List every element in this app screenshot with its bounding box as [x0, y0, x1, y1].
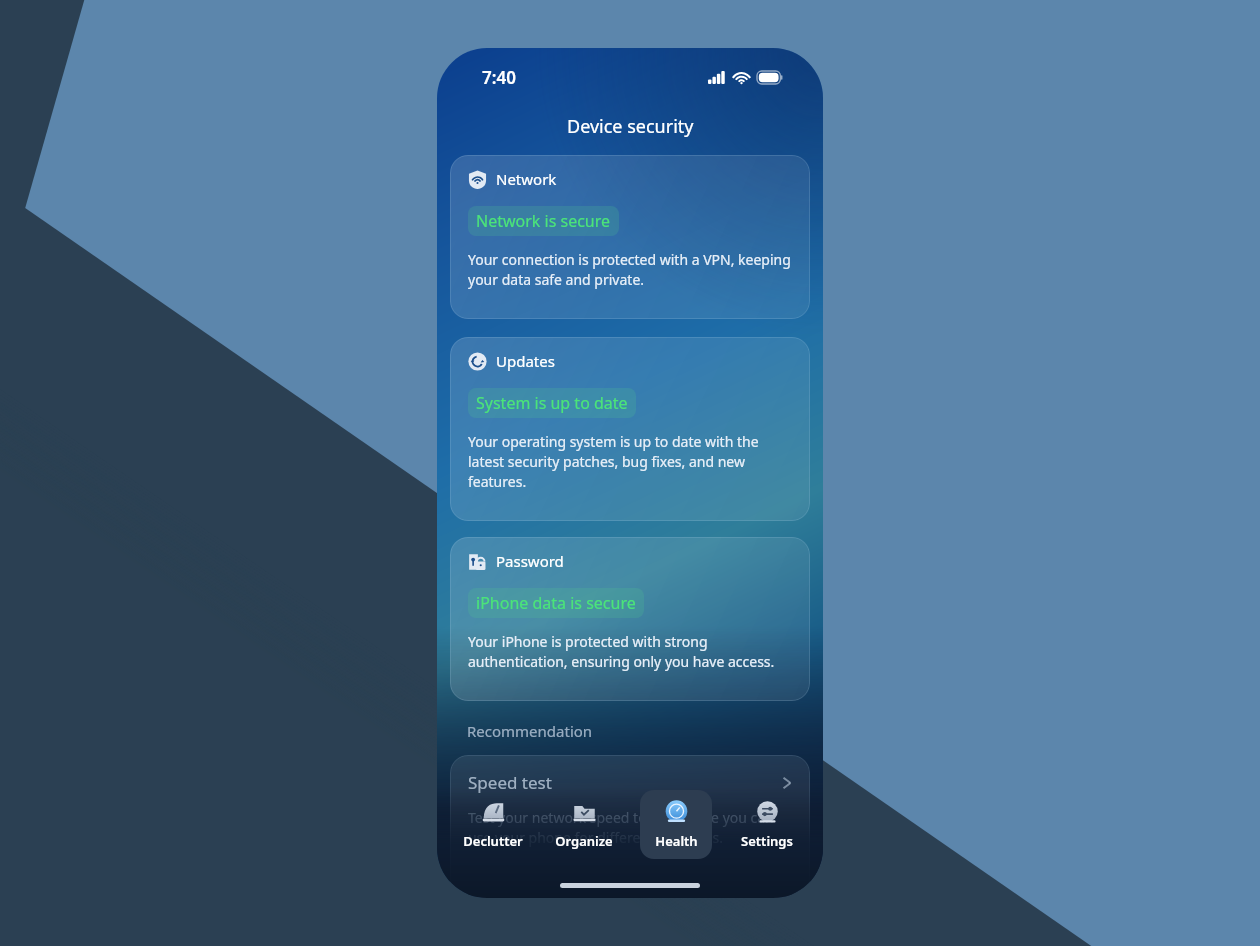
staticText: Password — [496, 551, 564, 571]
button[interactable]: Settings — [731, 790, 803, 859]
staticText: Your operating system is up to date with… — [468, 432, 794, 491]
button[interactable]: Updates — [450, 337, 810, 521]
staticText: Test your network speed to make sure you… — [468, 808, 794, 847]
button[interactable]: Organize — [548, 790, 620, 859]
staticText: Declutter — [463, 832, 523, 850]
button[interactable]: Network — [450, 155, 810, 319]
button[interactable]: Declutter — [457, 790, 529, 859]
staticText: Settings — [741, 832, 793, 850]
button[interactable]: Password — [450, 537, 810, 701]
staticText: Recommendation — [467, 721, 593, 741]
staticText: Device security — [567, 114, 694, 139]
staticText: Speed test — [468, 771, 552, 794]
staticText: Network is secure — [476, 210, 611, 232]
staticText: Your connection is protected with a VPN,… — [468, 250, 794, 289]
staticText: Your iPhone is protected with strong aut… — [468, 632, 794, 671]
staticText: Network — [496, 169, 557, 189]
button[interactable]: Speed test — [450, 755, 810, 898]
staticText: Health — [655, 832, 698, 850]
staticText: System is up to date — [476, 392, 628, 414]
staticText: 7:40 — [482, 66, 516, 89]
button[interactable]: Health — [640, 790, 712, 859]
staticText: Updates — [496, 351, 555, 371]
staticText: iPhone data is secure — [476, 592, 636, 614]
staticText: Organize — [555, 832, 613, 850]
